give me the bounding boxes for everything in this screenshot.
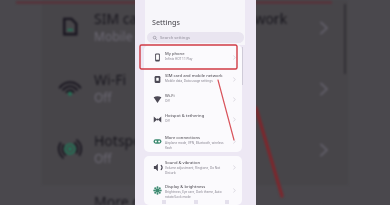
staticText: Hotspot & tethering	[165, 113, 205, 119]
button[interactable]: Hotspot & tethering	[144, 109, 242, 129]
staticText: More connections	[94, 192, 212, 205]
staticText: Off	[94, 150, 112, 166]
button[interactable]: SIM card and mobile network	[144, 69, 242, 89]
button[interactable]: Display & brightness	[144, 178, 242, 202]
staticText: Wi-Fi	[94, 70, 127, 89]
staticText: My phone	[165, 51, 185, 57]
button[interactable]: Search settings	[147, 32, 244, 43]
staticText: Hotspot & tethering	[94, 131, 226, 150]
staticText: Off	[94, 89, 112, 105]
staticText: SIM card and mobile network	[94, 9, 288, 28]
staticText: Sound & vibration	[165, 160, 201, 166]
button[interactable]: More connections	[144, 129, 242, 152]
staticText: Mobile data, Data usage settings	[165, 79, 213, 83]
staticText: Volume adjustment, Ringtone, Do Not Dist…	[165, 166, 221, 175]
staticText: Search settings	[160, 35, 190, 41]
button[interactable]: Wi-Fi	[144, 89, 242, 109]
staticText: SIM card and mobile network	[165, 73, 223, 79]
staticText: Display & brightness	[165, 184, 206, 190]
button[interactable]: Sound & vibration	[144, 156, 242, 178]
button[interactable]	[140, 45, 237, 69]
staticText: Settings	[152, 17, 180, 27]
button[interactable]: My phone	[144, 45, 242, 69]
staticText: Infinix HOT 11 Play	[165, 57, 193, 61]
staticText: Wi-Fi	[165, 93, 175, 99]
staticText: Off	[165, 99, 170, 103]
staticText: Brightness, Eye care, Dark theme, Auto r…	[165, 190, 222, 199]
staticText: More connections	[165, 135, 201, 141]
staticText: Airplane mode, VPN, Bluetooth, wireless …	[165, 141, 224, 150]
staticText: Mobile data, Data usage	[94, 28, 231, 44]
staticText: Off	[165, 119, 170, 123]
